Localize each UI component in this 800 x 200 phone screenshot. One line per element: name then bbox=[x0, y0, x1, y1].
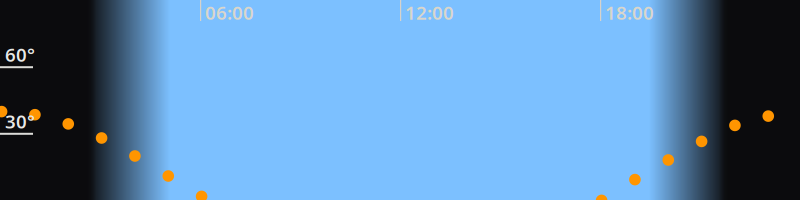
staticText: 12:00 bbox=[405, 0, 454, 25]
staticText: 30° bbox=[5, 109, 35, 134]
staticText: 18:00 bbox=[605, 0, 654, 25]
staticText: 06:00 bbox=[205, 0, 254, 25]
staticText: 60° bbox=[5, 42, 35, 67]
